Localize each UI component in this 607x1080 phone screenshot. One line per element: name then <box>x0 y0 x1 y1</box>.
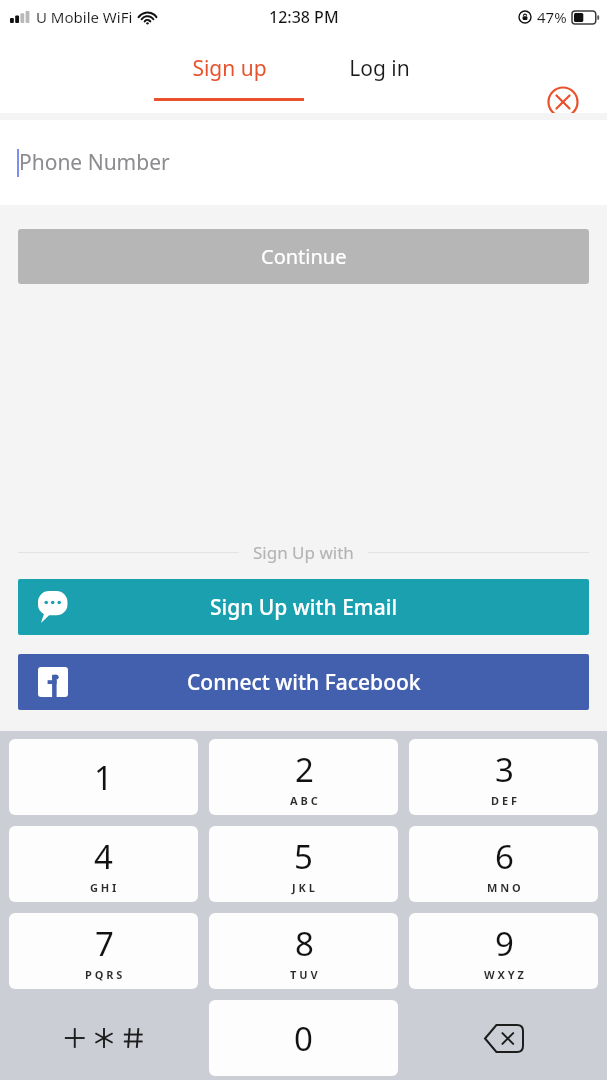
staticText: U Mobile WiFi <box>36 7 133 27</box>
button[interactable]: 7 <box>9 913 198 989</box>
button[interactable]: 2 <box>209 739 398 815</box>
staticText: 5 <box>294 834 313 879</box>
button[interactable]: 0 <box>209 1000 398 1076</box>
staticText: 9 <box>495 921 514 966</box>
staticText: Log in <box>349 54 410 83</box>
staticText: Sign Up with Email <box>210 593 398 622</box>
staticText: Continue <box>261 243 347 270</box>
staticText: 3 <box>495 747 514 792</box>
staticText: D E F <box>491 793 517 808</box>
button[interactable]: 1 <box>9 739 198 815</box>
staticText: Connect with Facebook <box>187 668 421 697</box>
button[interactable]: Delete <box>409 1000 598 1076</box>
staticText: 0 <box>294 1016 313 1061</box>
staticText: 6 <box>495 834 514 879</box>
button[interactable]: Continue <box>18 229 589 284</box>
staticText: 47% <box>537 7 567 27</box>
button[interactable]: 5 <box>209 826 398 902</box>
staticText: Phone Number <box>19 148 170 177</box>
staticText: 2 <box>295 747 314 792</box>
staticText: Sign Up with <box>253 541 354 563</box>
button[interactable]: 9 <box>409 913 598 989</box>
staticText: 8 <box>295 921 314 966</box>
staticText: G H I <box>90 880 117 895</box>
staticText: J K L <box>292 880 315 895</box>
staticText: P Q R S <box>85 967 123 982</box>
button[interactable]: Phone Number <box>0 120 607 205</box>
staticText: W X Y Z <box>484 967 524 982</box>
staticText: 7 <box>95 921 114 966</box>
button[interactable]: Log in <box>304 34 454 113</box>
button[interactable]: Close <box>545 84 581 120</box>
staticText: M N O <box>487 880 521 895</box>
button[interactable]: Connect with Facebook <box>18 654 589 710</box>
staticText: 12:38 PM <box>269 6 339 28</box>
staticText: A B C <box>290 793 318 808</box>
button[interactable]: 8 <box>209 913 398 989</box>
button[interactable]: Sign Up with Email <box>18 579 589 635</box>
button[interactable]: 6 <box>409 826 598 902</box>
button[interactable]: 4 <box>9 826 198 902</box>
staticText: T U V <box>290 967 318 982</box>
button[interactable]: Sign up <box>154 34 304 113</box>
staticText: 4 <box>94 834 113 879</box>
staticText: Sign up <box>192 54 267 83</box>
button[interactable]: 3 <box>409 739 598 815</box>
button[interactable]: Symbols <box>9 1000 198 1076</box>
staticText: 1 <box>94 755 113 800</box>
